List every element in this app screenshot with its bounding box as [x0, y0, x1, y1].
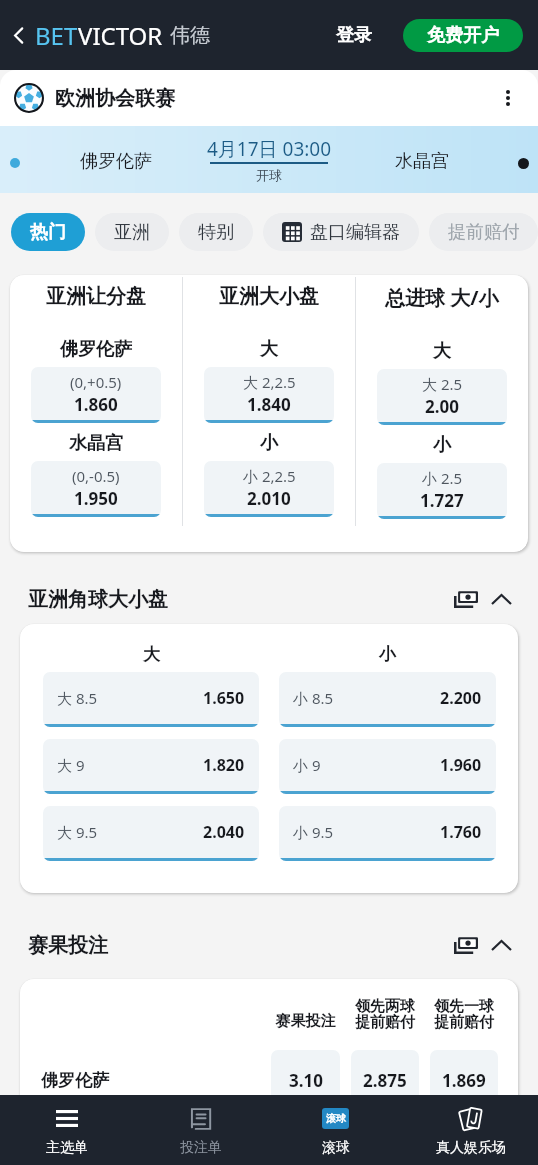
staticText: 伟德 — [170, 23, 210, 48]
staticText: 1.840 — [247, 393, 291, 416]
staticText: 佛罗伦萨 — [60, 338, 132, 361]
button[interactable]: 2.875 — [351, 1050, 419, 1110]
button[interactable]: 小 8.5 — [279, 672, 496, 727]
staticText: 赛果投注 — [271, 1012, 340, 1031]
staticText: 大 9 — [57, 755, 85, 775]
button[interactable]: 小 2.5 — [377, 463, 507, 519]
staticText: 开球 — [256, 167, 282, 183]
staticText: 领先一球 提前赔付 — [430, 997, 498, 1031]
button[interactable]: 滚球 — [268, 1095, 403, 1165]
button[interactable]: Back — [5, 22, 31, 48]
staticText: VICTOR — [78, 19, 163, 52]
staticText: 盘口编辑器 — [310, 221, 400, 244]
staticText: 1.860 — [74, 393, 118, 416]
button[interactable]: 佛罗伦萨 — [0, 126, 538, 193]
staticText: 佛罗伦萨 — [41, 1070, 109, 1091]
staticText: 1.960 — [440, 754, 482, 776]
staticText: 小 2.5 — [422, 468, 463, 488]
staticText: 1.869 — [442, 1069, 486, 1092]
staticText: 大 2.5 — [422, 374, 463, 394]
button[interactable]: 特别 — [179, 213, 253, 251]
staticText: 小 2,2.5 — [243, 466, 296, 486]
staticText: 2.040 — [203, 821, 245, 843]
staticText: 滚球 — [322, 1139, 350, 1157]
staticText: 2.875 — [363, 1069, 407, 1092]
button[interactable]: (0,-0.5) — [31, 461, 161, 517]
button[interactable]: 1.869 — [430, 1050, 498, 1110]
staticText: 投注单 — [180, 1139, 222, 1157]
button[interactable]: Cash out — [451, 930, 481, 960]
button[interactable]: 小 2,2.5 — [204, 461, 334, 517]
button[interactable]: 亚洲 — [95, 213, 169, 251]
button[interactable]: 真人娱乐场 — [403, 1095, 538, 1165]
staticText: 大 8.5 — [57, 688, 98, 708]
staticText: 佛罗伦萨 — [80, 150, 152, 173]
staticText: 赛果投注 — [28, 933, 108, 958]
staticText: 滚球 — [326, 1112, 346, 1125]
staticText: 4月17日 03:00 — [207, 136, 332, 162]
staticText: 小 9 — [293, 755, 321, 775]
staticText: 小 — [433, 434, 451, 457]
staticText: 主选单 — [46, 1139, 88, 1157]
staticText: 总进球 大/小 — [385, 284, 499, 311]
staticText: 登录 — [336, 24, 372, 47]
button[interactable]: 欧洲协会联赛 — [0, 70, 538, 126]
staticText: 小 9.5 — [293, 822, 334, 842]
button[interactable]: 盘口编辑器 — [263, 213, 419, 251]
staticText: 亚洲大小盘 — [219, 284, 319, 309]
button[interactable]: Collapse section — [486, 930, 516, 960]
button[interactable]: 小 9 — [279, 739, 496, 794]
staticText: 提前赔付 — [448, 221, 519, 244]
button[interactable]: 免费开户 — [403, 19, 523, 52]
staticText: 小 8.5 — [293, 688, 334, 708]
button[interactable]: 大 9 — [43, 739, 259, 794]
staticText: 1.727 — [420, 489, 464, 512]
staticText: (0,+0.5) — [70, 372, 122, 392]
button[interactable]: 小 9.5 — [279, 806, 496, 861]
staticText: 小 — [260, 432, 278, 455]
button[interactable]: More options — [492, 82, 524, 114]
staticText: 2.010 — [247, 487, 291, 510]
button[interactable]: 3.10 — [271, 1050, 340, 1110]
staticText: (0,-0.5) — [72, 466, 120, 486]
staticText: 1.650 — [203, 687, 245, 709]
staticText: 1.950 — [74, 487, 118, 510]
staticText: 水晶宫 — [69, 432, 123, 455]
staticText: 大 — [143, 644, 160, 665]
staticText: 1.820 — [203, 754, 245, 776]
staticText: 亚洲让分盘 — [46, 284, 146, 309]
staticText: 大 9.5 — [57, 822, 98, 842]
button[interactable]: (0,+0.5) — [31, 367, 161, 423]
button[interactable]: 投注单 — [134, 1095, 268, 1165]
button[interactable]: Cash out — [451, 584, 481, 614]
staticText: 水晶宫 — [395, 150, 449, 173]
staticText: 小 — [379, 644, 396, 665]
staticText: 领先两球 提前赔付 — [351, 997, 419, 1031]
button[interactable]: 大 9.5 — [43, 806, 259, 861]
button[interactable]: 主选单 — [0, 1095, 134, 1165]
staticText: 大 — [260, 338, 278, 361]
staticText: 欧洲协会联赛 — [55, 86, 175, 111]
button[interactable]: 热门 — [11, 213, 85, 251]
button[interactable]: 提前赔付 — [429, 213, 538, 251]
staticText: BET — [35, 19, 78, 52]
button[interactable]: 大 2,2.5 — [204, 367, 334, 423]
staticText: 大 — [433, 340, 451, 363]
staticText: 亚洲角球大小盘 — [28, 587, 168, 612]
button[interactable]: 登录 — [330, 16, 378, 55]
staticText: 2.00 — [425, 395, 459, 418]
staticText: 免费开户 — [427, 24, 499, 47]
staticText: 大 2,2.5 — [243, 372, 296, 392]
staticText: 热门 — [30, 221, 66, 244]
button[interactable]: 大 2.5 — [377, 369, 507, 425]
staticText: 特别 — [198, 221, 234, 244]
staticText: 1.760 — [440, 821, 482, 843]
button[interactable]: Collapse section — [486, 584, 516, 614]
staticText: 亚洲 — [114, 221, 150, 244]
staticText: 3.10 — [289, 1069, 323, 1092]
staticText: 真人娱乐场 — [436, 1139, 506, 1157]
staticText: 2.200 — [440, 687, 482, 709]
button[interactable]: 大 8.5 — [43, 672, 259, 727]
